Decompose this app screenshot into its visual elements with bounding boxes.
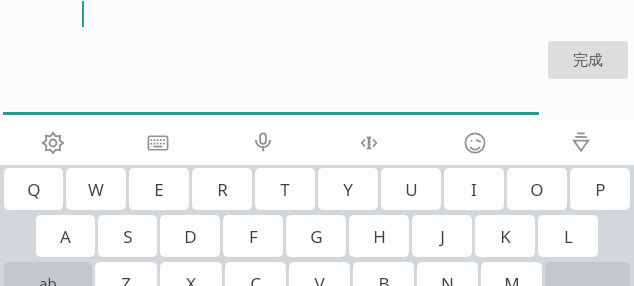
button[interactable]: R [192,168,252,210]
staticText: V [314,272,325,286]
button[interactable]: T [255,168,315,210]
button[interactable]: K [475,215,535,257]
staticText: R [217,178,228,201]
staticText: E [154,178,164,201]
staticText: F [249,225,258,248]
staticText: D [184,225,197,248]
button[interactable]: A [36,215,95,257]
staticText: S [123,225,133,248]
staticText: P [595,178,606,201]
button[interactable]: M [481,262,542,286]
button[interactable]: ab [4,262,92,286]
button[interactable]: Y [318,168,378,210]
staticText: L [564,225,573,248]
staticText: G [310,225,323,248]
button[interactable]: Voice input [210,121,316,165]
button[interactable]: Z [95,262,157,286]
button[interactable]: I [444,168,504,210]
staticText: C [250,272,261,286]
button[interactable]: N [417,262,478,286]
staticText: T [280,178,290,201]
staticText: O [530,178,544,201]
staticText: A [60,225,71,248]
staticText: J [440,225,445,248]
staticText: Y [343,178,353,201]
button[interactable]: U [381,168,441,210]
button[interactable]: Emoji [422,121,528,165]
button[interactable]: F [223,215,283,257]
staticText: H [373,225,386,248]
staticText: I [471,178,477,201]
button[interactable]: V [289,262,350,286]
button[interactable]: E [129,168,189,210]
staticText: N [441,272,454,286]
staticText: X [186,272,196,286]
button[interactable]: B [353,262,414,286]
button[interactable]: D [160,215,220,257]
staticText: Z [121,272,131,286]
button[interactable]: Q [4,168,63,210]
button[interactable]: Settings [0,121,105,165]
button[interactable]: C [225,262,286,286]
button[interactable]: G [286,215,346,257]
staticText: Q [27,178,41,201]
button[interactable]: X [160,262,222,286]
staticText: B [378,272,390,286]
staticText: ab [39,273,57,286]
staticText: W [88,178,104,201]
button[interactable]: P [570,168,630,210]
staticText: 完成 [573,51,603,70]
button[interactable]: S [98,215,157,257]
staticText: U [405,178,418,201]
button[interactable]: J [412,215,472,257]
staticText: K [500,225,511,248]
button[interactable]: O [507,168,567,210]
button[interactable]: W [66,168,126,210]
button[interactable]: L [538,215,598,257]
button[interactable]: Keyboard layout [105,121,210,165]
button[interactable]: H [349,215,409,257]
staticText: M [504,272,520,286]
button[interactable]: Move cursor [316,121,422,165]
button[interactable]: 完成 [548,41,628,79]
button[interactable]: Hide keyboard [528,121,634,165]
